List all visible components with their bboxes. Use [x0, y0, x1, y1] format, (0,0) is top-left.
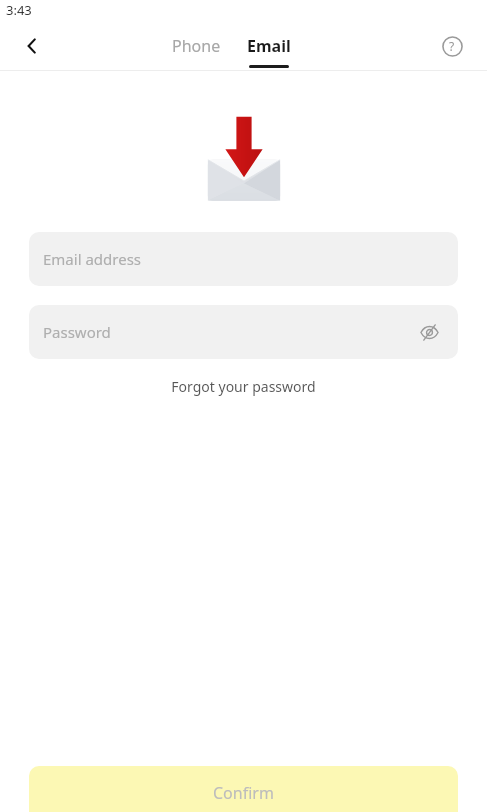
button[interactable]: Phone	[172, 22, 221, 70]
button[interactable]: Show password	[414, 317, 444, 347]
staticText: Forgot your password	[171, 377, 316, 396]
staticText: ?	[449, 38, 455, 54]
staticText: Confirm	[213, 782, 274, 804]
staticText: Email address	[43, 249, 142, 269]
staticText: Phone	[172, 35, 221, 57]
button[interactable]: Confirm	[29, 766, 458, 812]
staticText: Email	[247, 35, 291, 57]
button[interactable]: Back	[14, 28, 50, 64]
button[interactable]: Email	[247, 22, 291, 70]
button[interactable]: Password	[29, 305, 458, 359]
staticText: Password	[43, 322, 111, 342]
staticText: 3:43	[6, 1, 32, 19]
button[interactable]: Help	[433, 27, 471, 65]
button[interactable]: Email address	[29, 232, 458, 286]
button[interactable]: Forgot your password	[163, 373, 324, 400]
